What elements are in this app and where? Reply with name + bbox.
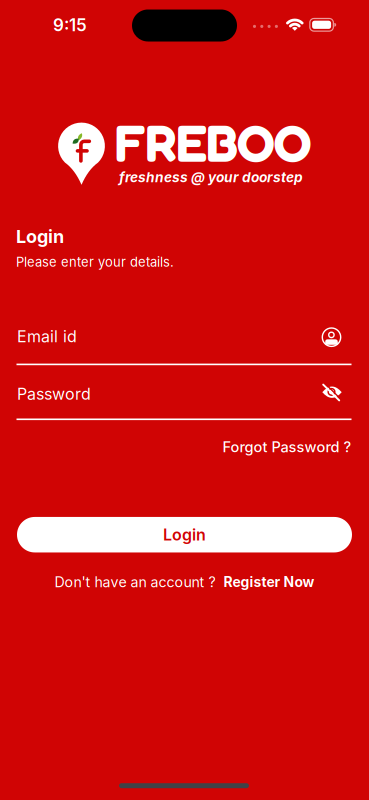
staticText: Login <box>16 226 64 247</box>
staticText: 9:15 <box>53 15 87 35</box>
staticText: Email id <box>17 327 77 346</box>
staticText: freshness @ your doorstep <box>119 169 303 185</box>
staticText: Login <box>163 525 206 544</box>
staticText: Password <box>17 384 91 404</box>
staticText: Please enter your details. <box>16 254 174 270</box>
staticText: Don't have an account ? <box>54 573 215 591</box>
button[interactable]: Show password <box>320 380 344 404</box>
button[interactable]: Account <box>319 325 343 349</box>
button[interactable]: Login <box>17 517 352 552</box>
button[interactable]: Forgot Password ? <box>222 438 351 456</box>
staticText: Register Now <box>223 574 314 590</box>
button[interactable]: Register Now <box>223 574 314 590</box>
staticText: Forgot Password ? <box>222 438 351 456</box>
staticText: FREBOO <box>114 111 312 174</box>
